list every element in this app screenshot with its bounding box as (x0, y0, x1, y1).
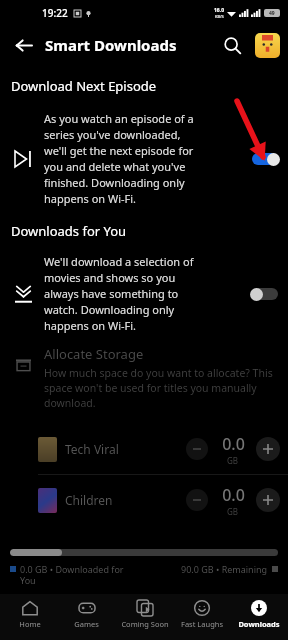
staticText: Children (65, 492, 113, 508)
button[interactable]: Increase (256, 488, 280, 512)
button[interactable]: Fast Laughs (174, 594, 229, 640)
staticText: We'll download a selection of movies and… (44, 254, 194, 333)
staticText: 0.0 GB • Downloaded for You (20, 563, 125, 587)
staticText: 19:22 (42, 6, 68, 20)
staticText: 49 (269, 10, 275, 17)
staticText: Smart Downloads (45, 35, 177, 55)
button[interactable]: As you watch an episode of a series you'… (0, 111, 288, 206)
button[interactable]: Downloads (231, 594, 286, 640)
button[interactable]: Decrease (186, 489, 208, 511)
staticText: Games (74, 619, 99, 629)
staticText: Download Next Episode (11, 77, 157, 95)
button[interactable]: Children (0, 475, 288, 525)
button[interactable]: Increase (256, 437, 280, 461)
button[interactable]: Search (218, 31, 246, 59)
staticText: Home (19, 619, 41, 629)
button[interactable]: Toggle on (250, 149, 280, 169)
staticText: Downloads for You (11, 222, 127, 240)
staticText: Allocate Storage (44, 345, 144, 363)
staticText: 0.0 (222, 433, 245, 455)
staticText: Tech Viral (65, 441, 119, 457)
staticText: 0.0 (222, 484, 245, 506)
button[interactable]: Allocate Storage (0, 345, 288, 410)
staticText: GB (227, 506, 239, 517)
staticText: Coming Soon (121, 619, 169, 629)
button[interactable]: Back (8, 30, 38, 60)
staticText: 90.0 GB • Remaining (181, 563, 268, 575)
staticText: Downloads (238, 619, 280, 629)
button[interactable]: Decrease (186, 438, 208, 460)
staticText: GB (227, 455, 239, 466)
staticText: 16.0 (214, 7, 224, 14)
button[interactable]: Games (59, 594, 114, 640)
staticText: KB/S (215, 14, 224, 19)
button[interactable]: Toggle off (250, 284, 280, 304)
button[interactable]: Home (2, 594, 57, 640)
staticText: As you watch an episode of a series you'… (44, 111, 194, 206)
staticText: How much space do you want to allocate? … (44, 366, 278, 410)
staticText: Fast Laughs (181, 619, 223, 629)
button[interactable]: We'll download a selection of movies and… (0, 254, 288, 333)
button[interactable]: Profile (255, 33, 280, 58)
button[interactable]: Coming Soon (117, 594, 172, 640)
button[interactable]: Tech Viral (0, 424, 288, 474)
